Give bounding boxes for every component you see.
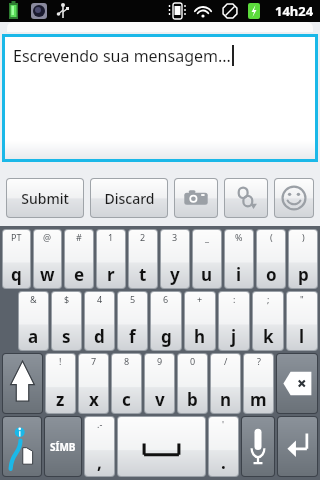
staticText: Escrevendo sua mensagem...	[13, 45, 231, 67]
staticText: $	[64, 293, 70, 305]
staticText: !	[59, 355, 62, 367]
button[interactable]: 9	[145, 354, 174, 413]
staticText: z	[56, 388, 65, 411]
button[interactable]: Discard	[91, 179, 167, 217]
staticText: p	[298, 263, 309, 286]
staticText: d	[94, 325, 105, 348]
staticText: Submit	[21, 189, 69, 208]
staticText: e	[74, 263, 85, 286]
staticText: 14h24	[275, 2, 314, 20]
staticText: 0	[190, 355, 196, 367]
staticText: PT	[11, 231, 22, 243]
button[interactable]: 4	[85, 292, 114, 350]
staticText: 2	[140, 231, 146, 243]
button[interactable]: Attach link	[225, 179, 267, 217]
staticText: h	[194, 325, 206, 348]
staticText: a	[28, 325, 39, 348]
button[interactable]: 8	[112, 354, 141, 413]
button[interactable]: 0	[178, 354, 207, 413]
staticText: u	[201, 263, 213, 286]
button[interactable]: Camera	[175, 179, 217, 217]
staticText: m	[250, 388, 267, 411]
button[interactable]: $	[52, 292, 81, 350]
button[interactable]: :	[219, 292, 249, 350]
button[interactable]: 6	[151, 292, 181, 350]
staticText: +	[197, 293, 203, 305]
button[interactable]: Voice input	[242, 417, 274, 476]
button[interactable]: _	[193, 230, 221, 288]
button[interactable]: Space	[118, 417, 205, 476]
staticText: /	[224, 355, 228, 367]
staticText: '	[222, 418, 225, 430]
staticText: #	[76, 231, 82, 243]
button[interactable]: PT	[3, 230, 30, 288]
button[interactable]: 5	[118, 292, 147, 350]
button[interactable]: /	[211, 354, 240, 413]
button[interactable]: Shift	[3, 354, 42, 413]
button[interactable]: +	[185, 292, 215, 350]
staticText: 6	[163, 293, 169, 305]
staticText: n	[220, 388, 232, 411]
button[interactable]: 7	[79, 354, 108, 413]
button[interactable]: .-	[85, 417, 114, 476]
button[interactable]: ;	[253, 292, 283, 350]
staticText: &	[30, 293, 37, 305]
button[interactable]: @	[34, 230, 61, 288]
button[interactable]: (	[257, 230, 285, 288]
staticText: Discard	[104, 189, 155, 208]
button[interactable]: Escrevendo sua mensagem...	[5, 37, 315, 159]
staticText: 3	[172, 231, 178, 243]
button[interactable]: 1	[97, 230, 125, 288]
button[interactable]: 3	[161, 230, 189, 288]
staticText: ,	[97, 451, 102, 474]
staticText: .-	[97, 418, 103, 430]
staticText: @	[43, 231, 52, 243]
button[interactable]: SÍMB	[45, 417, 81, 476]
staticText: ?	[257, 355, 261, 367]
staticText: %	[235, 231, 243, 243]
staticText: b	[187, 388, 198, 411]
staticText: "	[300, 293, 304, 305]
button[interactable]: Enter	[278, 417, 317, 476]
button[interactable]: ?	[244, 354, 273, 413]
staticText: l	[299, 325, 305, 348]
button[interactable]: )	[289, 230, 317, 288]
staticText: k	[263, 325, 274, 348]
staticText: 7	[91, 355, 97, 367]
staticText: c	[122, 388, 131, 411]
staticText: x	[89, 388, 99, 411]
staticText: 1	[108, 231, 114, 243]
button[interactable]: Delete	[277, 354, 317, 413]
button[interactable]: '	[209, 417, 238, 476]
staticText: y	[170, 263, 180, 286]
button[interactable]: Change language	[3, 417, 41, 476]
staticText: q	[11, 263, 22, 286]
staticText: f	[129, 325, 136, 348]
staticText: SÍMB	[50, 440, 76, 454]
staticText: v	[155, 388, 165, 411]
staticText: g	[161, 325, 172, 348]
staticText: 5	[130, 293, 136, 305]
staticText: 4	[97, 293, 103, 305]
button[interactable]: #	[65, 230, 93, 288]
button[interactable]: Emoticon	[275, 179, 313, 217]
staticText: j	[231, 325, 237, 348]
staticText: w	[40, 263, 55, 286]
staticText: i	[236, 263, 242, 286]
button[interactable]: "	[287, 292, 317, 350]
staticText: _	[205, 231, 209, 243]
button[interactable]: Submit	[7, 179, 83, 217]
staticText: )	[302, 231, 305, 243]
staticText: o	[266, 263, 277, 286]
staticText: t	[139, 263, 147, 286]
staticText: .	[221, 451, 226, 474]
button[interactable]: !	[46, 354, 75, 413]
button[interactable]: 2	[129, 230, 157, 288]
staticText: :	[233, 293, 236, 305]
staticText: r	[107, 263, 115, 286]
staticText: (	[270, 231, 273, 243]
staticText: 8	[124, 355, 130, 367]
staticText: 9	[157, 355, 163, 367]
button[interactable]: %	[225, 230, 253, 288]
button[interactable]: &	[19, 292, 48, 350]
